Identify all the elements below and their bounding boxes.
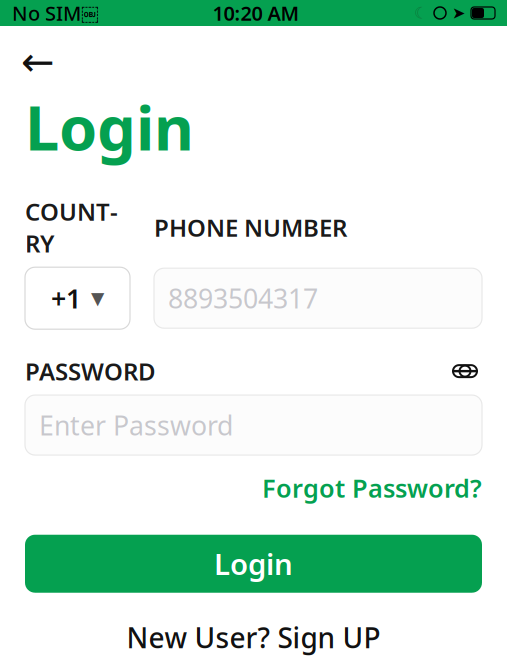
staticText: 10:20 AM bbox=[212, 0, 299, 26]
staticText: PHONE NUMBER bbox=[154, 211, 347, 243]
button[interactable]: Back bbox=[16, 40, 60, 84]
button[interactable]: 8893504317 bbox=[154, 268, 482, 328]
staticText: 8893504317 bbox=[168, 280, 318, 316]
button[interactable]: New User? Sign UP bbox=[126, 619, 380, 656]
staticText: Login bbox=[25, 86, 194, 167]
button[interactable]: Enter Password bbox=[25, 395, 482, 455]
button[interactable]: +1 bbox=[25, 267, 130, 329]
staticText: Forgot Password? bbox=[262, 471, 482, 505]
staticText: ☾ bbox=[414, 4, 428, 22]
staticText: ➤ bbox=[452, 4, 465, 22]
staticText: PASSWORD bbox=[25, 355, 156, 387]
button[interactable]: Show password bbox=[448, 357, 482, 385]
staticText: ▼ bbox=[91, 288, 104, 308]
staticText: New User? Sign UP bbox=[126, 619, 380, 656]
button[interactable]: Login bbox=[25, 535, 482, 593]
staticText: ￼ bbox=[81, 1, 98, 24]
button[interactable]: Forgot Password? bbox=[262, 471, 482, 505]
staticText: Enter Password bbox=[39, 407, 233, 443]
staticText: COUNTRY bbox=[25, 195, 118, 259]
staticText: No SIM bbox=[12, 0, 81, 26]
staticText: ← bbox=[21, 39, 55, 85]
staticText: +1 bbox=[51, 280, 81, 316]
staticText: Login bbox=[214, 544, 293, 583]
